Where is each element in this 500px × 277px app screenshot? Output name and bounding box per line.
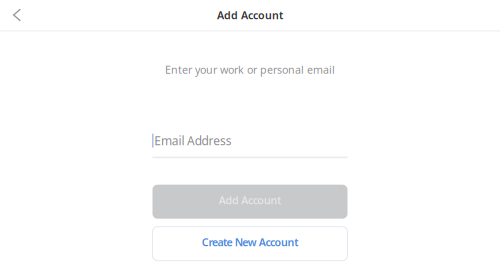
staticText: Add Account (217, 8, 283, 22)
staticText: Add Account (219, 193, 281, 207)
button[interactable]: Add Account (152, 185, 347, 219)
staticText: Email Address (154, 133, 232, 148)
button[interactable]: Back (0, 1, 34, 29)
staticText: Create New Account (202, 235, 298, 249)
staticText: Enter your work or personal email (165, 62, 335, 77)
button[interactable]: Email Address (152, 133, 347, 158)
button[interactable]: Create New Account (152, 227, 347, 261)
